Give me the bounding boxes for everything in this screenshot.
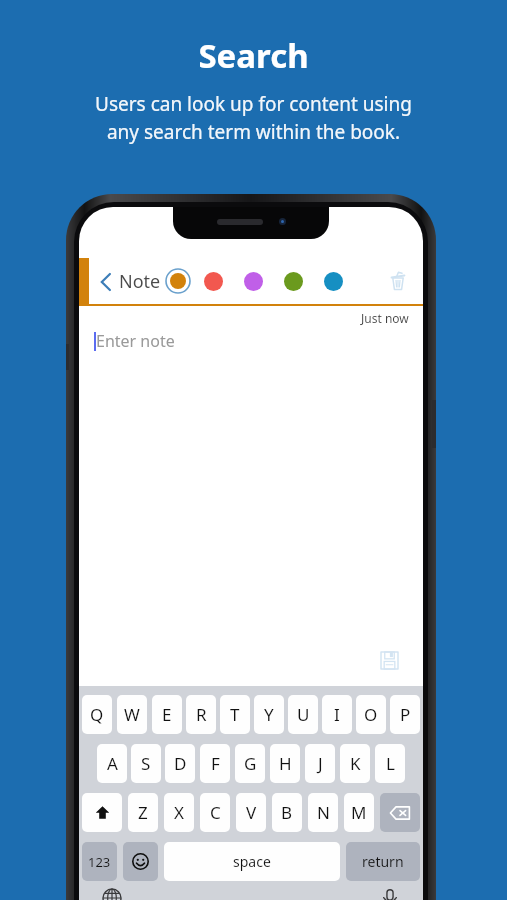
button[interactable]: U [288, 695, 318, 734]
button[interactable]: B [272, 793, 302, 832]
button[interactable]: Y [254, 695, 284, 734]
staticText: Note [119, 269, 161, 294]
staticText: N [317, 801, 330, 824]
button[interactable]: T [220, 695, 250, 734]
staticText: Q [90, 703, 104, 726]
button[interactable]: Blue colour [322, 270, 344, 292]
button[interactable]: Purple colour [242, 270, 264, 292]
button[interactable]: M [344, 793, 374, 832]
button[interactable]: Save note [375, 646, 403, 674]
button[interactable]: Orange colour [165, 268, 191, 294]
button[interactable]: Q [82, 695, 112, 734]
button[interactable]: Note [97, 265, 163, 298]
button[interactable]: Change keyboard [97, 883, 127, 900]
staticText: Enter note [96, 330, 175, 352]
staticText: Z [138, 801, 148, 824]
button[interactable]: N [308, 793, 338, 832]
staticText: V [246, 801, 257, 824]
staticText: Users can look up for content using any … [95, 91, 412, 145]
button[interactable]: P [390, 695, 420, 734]
button[interactable]: X [164, 793, 194, 832]
button[interactable]: Voice input [375, 883, 405, 900]
button[interactable]: L [375, 744, 405, 783]
button[interactable]: H [270, 744, 300, 783]
staticText: D [174, 752, 187, 775]
staticText: H [279, 752, 292, 775]
staticText: Search [198, 33, 309, 78]
staticText: J [318, 752, 323, 775]
staticText: U [297, 703, 310, 726]
button[interactable]: F [200, 744, 230, 783]
staticText: Y [264, 703, 274, 726]
button[interactable]: Delete note [383, 266, 413, 296]
button[interactable]: S [131, 744, 161, 783]
button[interactable]: K [340, 744, 370, 783]
button[interactable]: Red colour [202, 270, 224, 292]
button[interactable]: E [152, 695, 182, 734]
staticText: A [107, 752, 118, 775]
button[interactable]: Backspace [380, 793, 420, 832]
staticText: T [230, 703, 240, 726]
staticText: G [244, 752, 257, 775]
staticText: C [210, 801, 221, 824]
staticText: Just now [361, 310, 409, 326]
button[interactable]: 123 [82, 842, 117, 881]
button[interactable]: V [236, 793, 266, 832]
button[interactable]: Shift [82, 793, 122, 832]
button[interactable]: A [97, 744, 127, 783]
staticText: W [124, 703, 140, 726]
staticText: L [386, 752, 395, 775]
button[interactable]: J [305, 744, 335, 783]
staticText: P [400, 703, 411, 726]
staticText: I [334, 703, 340, 726]
button[interactable]: D [165, 744, 195, 783]
staticText: E [162, 703, 172, 726]
staticText: space [233, 852, 271, 871]
staticText: F [211, 752, 220, 775]
button[interactable]: I [322, 695, 352, 734]
button[interactable]: R [186, 695, 216, 734]
staticText: B [281, 801, 293, 824]
staticText: 123 [88, 853, 111, 871]
staticText: R [196, 703, 207, 726]
staticText: X [174, 801, 184, 824]
staticText: M [351, 801, 367, 824]
button[interactable]: return [346, 842, 420, 881]
button[interactable]: C [200, 793, 230, 832]
staticText: K [350, 752, 361, 775]
button[interactable]: Emoji [123, 842, 158, 881]
button[interactable]: Green colour [282, 270, 304, 292]
staticText: return [362, 852, 404, 871]
staticText: S [141, 752, 151, 775]
button[interactable]: space [164, 842, 340, 881]
button[interactable]: Z [128, 793, 158, 832]
button[interactable]: O [356, 695, 386, 734]
button[interactable]: G [235, 744, 265, 783]
staticText: O [364, 703, 378, 726]
button[interactable]: W [117, 695, 147, 734]
